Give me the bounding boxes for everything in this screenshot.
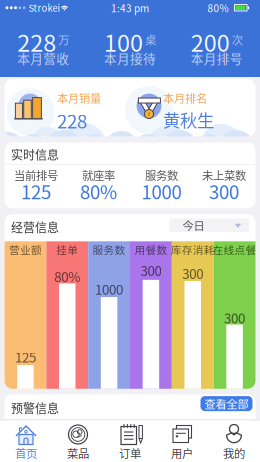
staticText: 桌 [145, 31, 156, 48]
staticText: Strokei [28, 1, 60, 14]
staticText: 营业额 [9, 242, 42, 257]
staticText: 125 [21, 177, 51, 204]
staticText: 80% [80, 177, 117, 204]
staticText: 本月销量 [57, 89, 101, 106]
staticText: 库存消耗 [171, 242, 215, 257]
staticText: 在线点餐 [213, 242, 257, 257]
staticText: 挂单 [56, 242, 78, 257]
staticText: 1000 [95, 279, 123, 299]
staticText: 万 [58, 31, 69, 48]
staticText: 就座率 [82, 167, 115, 183]
staticText: 查看全部 [204, 395, 248, 412]
staticText: 当前排号 [14, 167, 58, 183]
staticText: 300 [209, 177, 239, 204]
staticText: 100 [104, 25, 143, 58]
staticText: 菜品 [67, 445, 89, 461]
staticText: 用餐数 [134, 242, 167, 257]
staticText: 80% [54, 266, 80, 286]
staticText: 次 [232, 31, 243, 48]
staticText: 服务数 [93, 242, 126, 257]
staticText: 300 [224, 308, 245, 327]
staticText: 订单 [119, 445, 141, 461]
staticText: 1000 [141, 177, 181, 204]
staticText: 1:43 pm [111, 1, 149, 15]
staticText: 200 [191, 25, 230, 58]
staticText: 300 [182, 264, 203, 283]
staticText: 本月排名 [163, 89, 207, 106]
staticText: 本月排号 [191, 49, 243, 67]
staticText: 本月营收 [17, 49, 69, 67]
staticText: 服务数 [145, 167, 178, 183]
staticText: 本月接待 [104, 49, 156, 67]
staticText: 用户 [171, 445, 193, 461]
staticText: 300 [140, 260, 161, 280]
staticText: 黄秋生 [163, 107, 214, 132]
staticText: 228 [17, 25, 56, 58]
staticText: 经营信息 [11, 218, 59, 236]
staticText: 228 [57, 107, 87, 134]
staticText: 未上菜数 [202, 167, 246, 183]
staticText: 80% [207, 1, 228, 15]
staticText: 首页 [15, 445, 37, 461]
staticText: 预警信息 [11, 399, 59, 417]
staticText: 今日 [182, 217, 204, 233]
staticText: 实时信息 [11, 146, 59, 163]
staticText: 125 [15, 347, 36, 366]
staticText: 我的 [223, 445, 245, 461]
